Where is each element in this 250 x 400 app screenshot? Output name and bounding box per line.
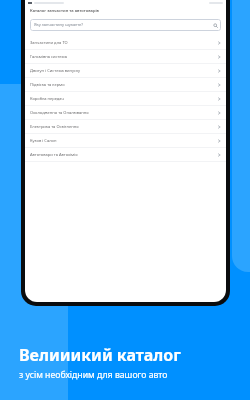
button[interactable]: Гальмівна система [25,50,226,64]
button[interactable]: Коробка передач [25,92,226,106]
staticText: Підвіска та кермо [30,82,65,88]
staticText: Каталог запчастин та автотоварів [30,8,99,14]
button[interactable]: Двигун і Система випуску [25,64,226,78]
other: Search [213,23,218,28]
button[interactable]: Яку запчастину шукаєте? [30,19,221,31]
staticText: Яку запчастину шукаєте? [34,22,83,28]
staticText: Коробка передач [30,96,64,102]
staticText: Велииикий каталог [19,344,181,366]
staticText: Гальмівна система [30,54,67,60]
button[interactable]: Кузов і Салон [25,134,226,148]
button[interactable]: Охолодження та Опалювання [25,106,226,120]
button[interactable]: Електрика та Освітлення [25,120,226,134]
staticText: Автотовари та Автохімія [30,152,78,158]
staticText: Двигун і Система випуску [30,68,81,74]
staticText: Електрика та Освітлення [30,124,79,130]
staticText: Кузов і Салон [30,138,57,144]
button[interactable]: Підвіска та кермо [25,78,226,92]
staticText: Запчастини для ТО [30,40,68,46]
staticText: з усім необхідним для вашого авто [19,369,168,381]
button[interactable]: Автотовари та Автохімія [25,148,226,162]
staticText: Охолодження та Опалювання [30,110,89,116]
button[interactable]: Запчастини для ТО [25,36,226,50]
